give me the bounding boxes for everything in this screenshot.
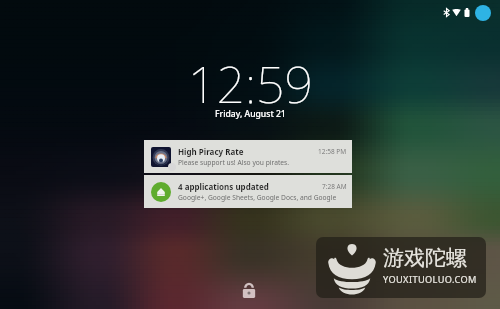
other: Wi-Fi (452, 9, 461, 16)
staticText: High Piracy Rate (178, 146, 244, 157)
button[interactable]: Unlock (238, 279, 260, 301)
other: Battery (464, 8, 470, 17)
button[interactable]: Account (475, 5, 491, 21)
button[interactable]: 4 applications updated (144, 175, 352, 208)
staticText: 游戏陀螺 (383, 245, 467, 271)
staticText: Please support us! Also you pirates. (178, 158, 290, 167)
staticText: 4 applications updated (178, 181, 269, 192)
button[interactable]: High Piracy Rate (144, 140, 352, 173)
staticText: YOUXITUOLUO.COM (383, 273, 477, 286)
staticText: 12:59 (188, 50, 313, 118)
staticText: 12:58 PM (318, 147, 347, 156)
other: Bluetooth (443, 8, 450, 17)
staticText: Friday, August 21 (215, 108, 286, 120)
staticText: 7:28 AM (322, 182, 347, 191)
staticText: Google+, Google Sheets, Google Docs, and… (178, 193, 337, 202)
